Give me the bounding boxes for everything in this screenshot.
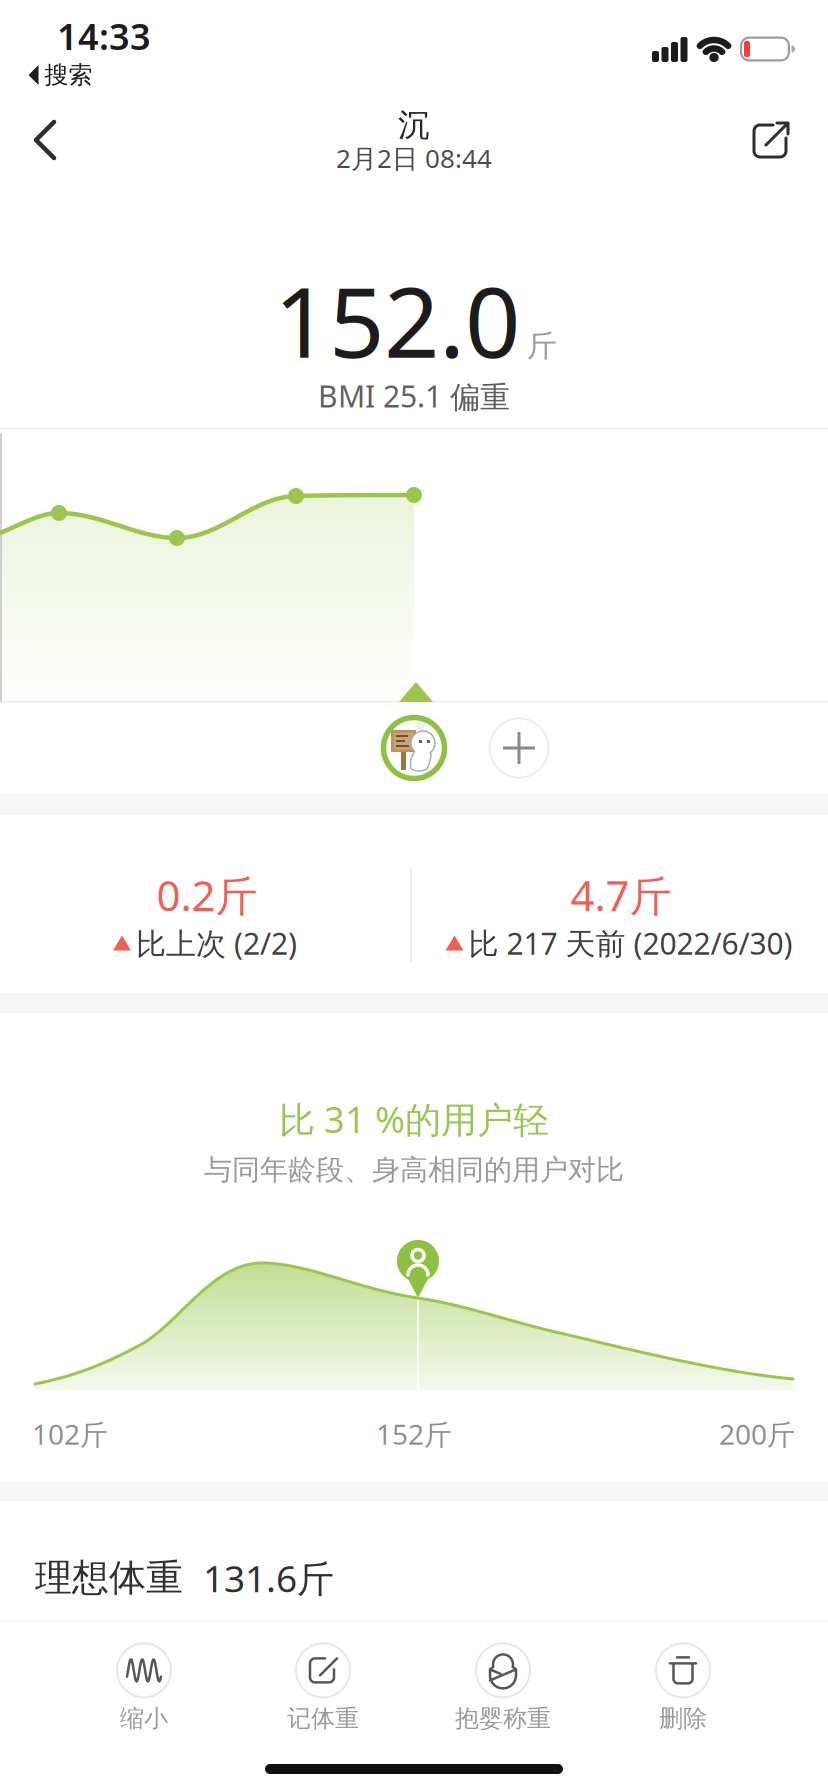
staticText: 2月2日 08:44 — [336, 140, 492, 176]
staticText: BMI 25.1 偏重 — [318, 375, 510, 416]
staticText: 102斤 — [32, 1415, 108, 1453]
staticText: 理想体重 — [35, 1555, 183, 1601]
button[interactable]: 抱婴称重 — [428, 1640, 578, 1736]
staticText: 0.2斤 — [156, 866, 257, 924]
button[interactable]: 删除 — [608, 1640, 758, 1736]
staticText: 记体重 — [287, 1703, 359, 1734]
button[interactable]: 缩小 — [69, 1640, 219, 1736]
staticText: 比 31 %的用户轻 — [279, 1094, 549, 1143]
button[interactable]: 记体重 — [248, 1640, 398, 1736]
button[interactable]: Profile — [379, 713, 449, 783]
staticText: 比上次 (2/2) — [136, 923, 297, 963]
staticText: 4.7斤 — [570, 866, 671, 924]
staticText: 抱婴称重 — [455, 1703, 551, 1734]
staticText: 缩小 — [120, 1703, 168, 1734]
staticText: 沉 — [398, 105, 430, 145]
button[interactable]: Back to Search — [22, 61, 98, 89]
staticText: 152.0 — [274, 254, 520, 386]
button[interactable]: Share — [749, 120, 793, 162]
staticText: 14:33 — [57, 11, 151, 60]
staticText: 131.6斤 — [203, 1553, 334, 1603]
staticText: 152斤 — [376, 1415, 452, 1453]
button[interactable]: Back — [30, 118, 74, 162]
staticText: 斤 — [527, 327, 557, 365]
staticText: 200斤 — [719, 1415, 795, 1453]
staticText: 与同年龄段、身高相同的用户对比 — [204, 1152, 624, 1188]
staticText: 比 217 天前 (2022/6/30) — [468, 923, 792, 963]
button[interactable]: Add — [488, 717, 550, 779]
staticText: 删除 — [659, 1703, 707, 1734]
staticText: 搜索 — [44, 60, 92, 90]
